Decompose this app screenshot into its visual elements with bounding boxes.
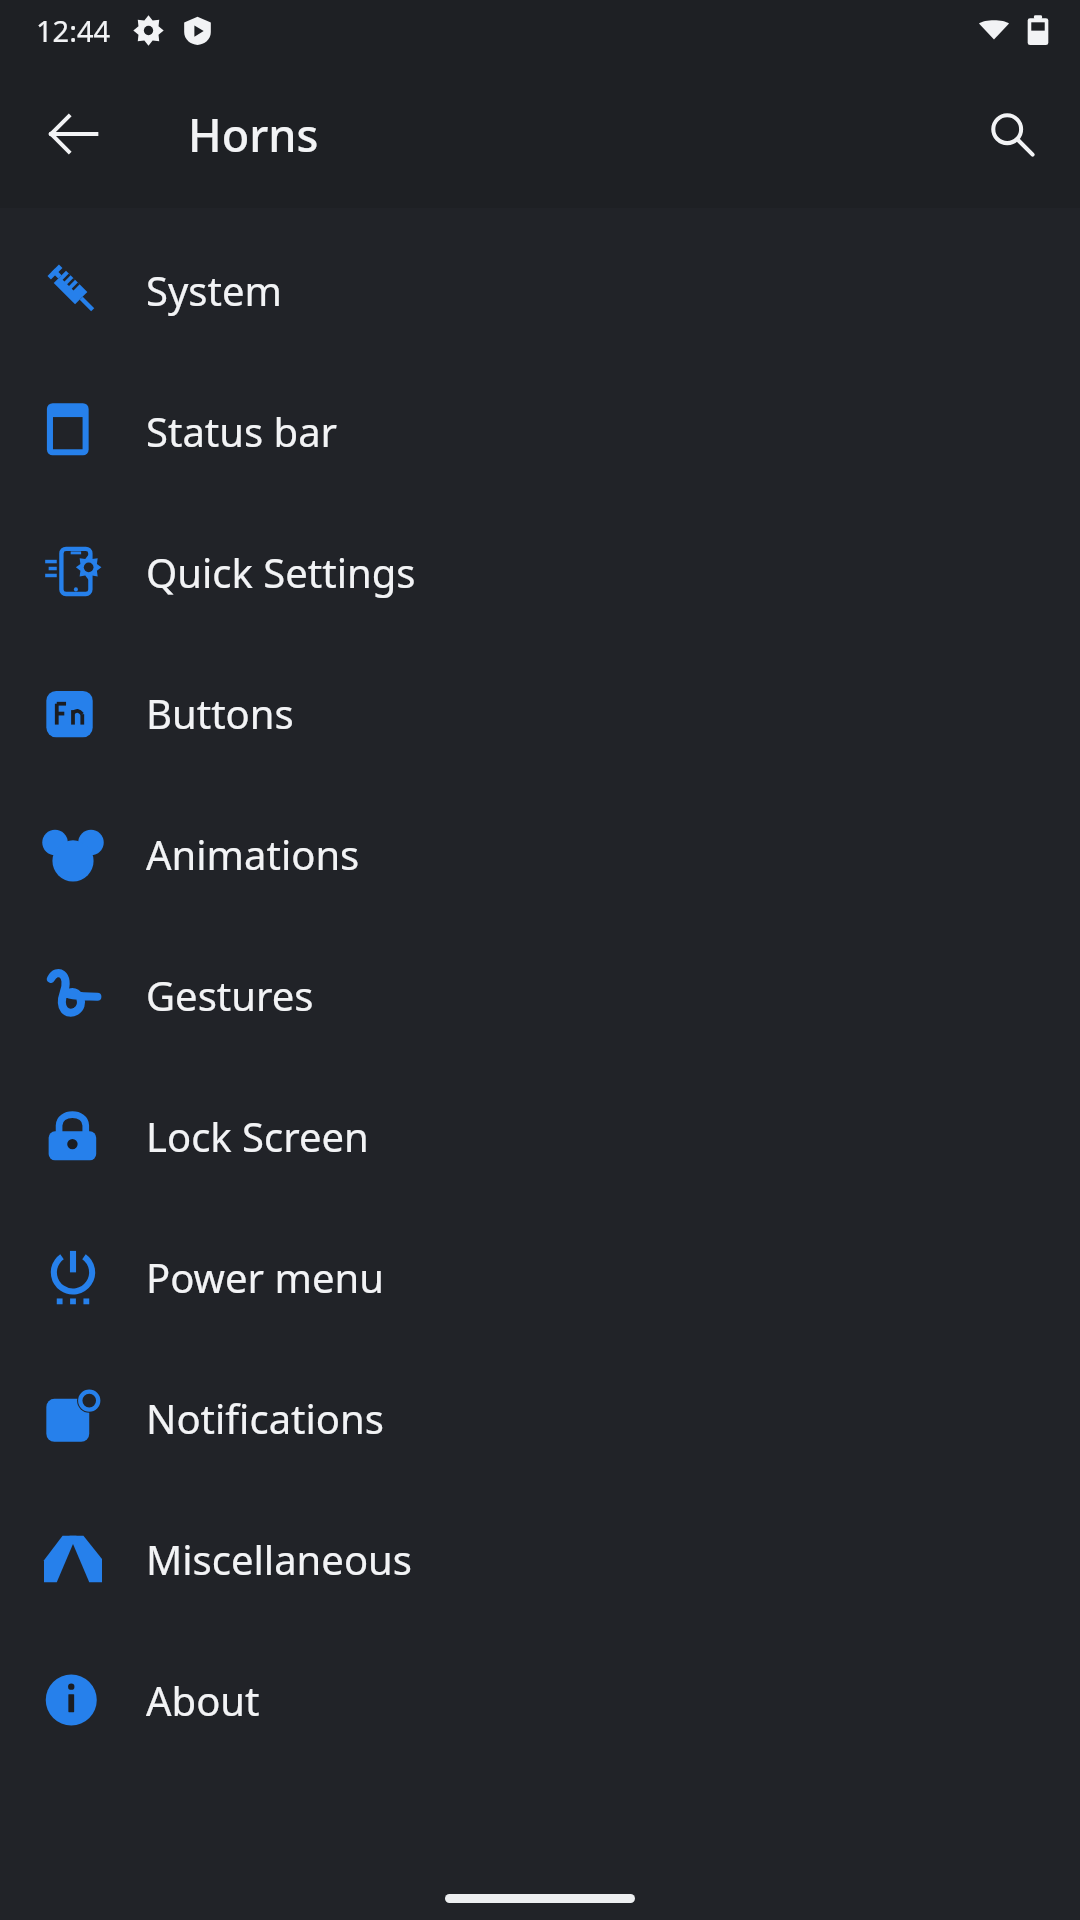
button[interactable]: Gestures bbox=[0, 924, 1080, 1065]
button[interactable]: Quick Settings bbox=[0, 501, 1080, 642]
staticText: Horns bbox=[188, 104, 319, 165]
staticText: Gestures bbox=[146, 968, 314, 1022]
staticText: Power menu bbox=[146, 1250, 384, 1304]
button[interactable]: Status bar bbox=[0, 360, 1080, 501]
staticText: About bbox=[146, 1673, 260, 1727]
staticText: Miscellaneous bbox=[146, 1532, 412, 1586]
staticText: Animations bbox=[146, 827, 360, 881]
button[interactable]: Notifications bbox=[0, 1347, 1080, 1488]
button[interactable]: Miscellaneous bbox=[0, 1488, 1080, 1629]
staticText: System bbox=[146, 263, 282, 317]
button[interactable]: About bbox=[0, 1629, 1080, 1770]
button[interactable]: Power menu bbox=[0, 1206, 1080, 1347]
staticText: Status bar bbox=[146, 404, 338, 458]
staticText: Buttons bbox=[146, 686, 294, 740]
button[interactable]: System bbox=[0, 219, 1080, 360]
staticText: Notifications bbox=[146, 1391, 384, 1445]
button[interactable]: Buttons bbox=[0, 642, 1080, 783]
button[interactable]: Lock Screen bbox=[0, 1065, 1080, 1206]
button[interactable]: Animations bbox=[0, 783, 1080, 924]
button[interactable]: Back bbox=[25, 86, 121, 182]
staticText: Quick Settings bbox=[146, 545, 416, 599]
staticText: Lock Screen bbox=[146, 1109, 369, 1163]
staticText: 12:44 bbox=[36, 11, 111, 50]
button[interactable]: Search bbox=[964, 86, 1060, 182]
